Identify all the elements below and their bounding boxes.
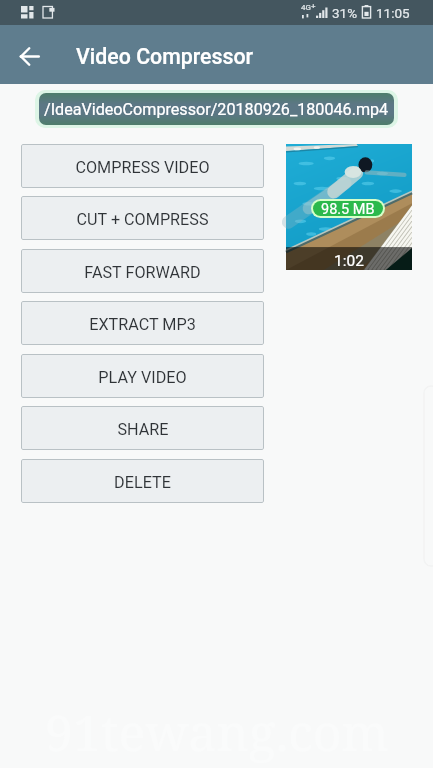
staticText: PLAY VIDEO [98,368,187,387]
staticText: COMPRESS VIDEO [75,158,210,177]
button[interactable]: DELETE [21,459,264,503]
staticText: 98.5 MB [321,201,375,216]
staticText: DELETE [114,473,171,492]
button[interactable]: CUT + COMPRESS [21,196,264,240]
staticText: 31% [332,5,358,21]
staticText: /IdeaVideoCompressor/20180926_180046.mp4 [44,100,389,119]
staticText: 11:05 [376,5,410,21]
button[interactable]: COMPRESS VIDEO [21,144,264,188]
button[interactable]: /IdeaVideoCompressor/20180926_180046.mp4 [39,93,394,125]
button[interactable]: Back [8,34,50,76]
staticText: Video Compressor [76,44,254,69]
button[interactable]: SHARE [21,406,264,450]
button[interactable]: FAST FORWARD [21,249,264,293]
staticText: + [311,2,316,11]
staticText: 1:02 [334,252,364,270]
staticText: FAST FORWARD [84,263,201,282]
staticText: CUT + COMPRESS [76,210,209,229]
staticText: EXTRACT MP3 [89,315,196,334]
button[interactable]: PLAY VIDEO [21,354,264,398]
staticText: SHARE [117,420,169,439]
staticText: 4G [301,3,311,12]
button[interactable]: EXTRACT MP3 [21,301,264,345]
